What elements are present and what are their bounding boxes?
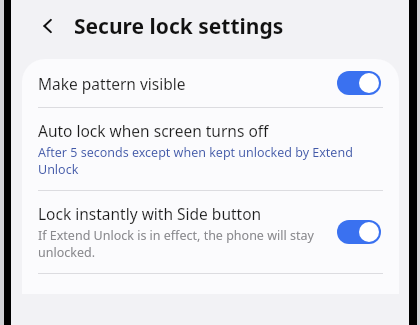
button[interactable]: Auto lock when screen turns off <box>22 108 399 190</box>
button[interactable]: Lock instantly with Side button <box>22 191 399 273</box>
staticText: Make pattern visible <box>38 73 186 94</box>
button[interactable]: Back <box>31 9 65 43</box>
staticText: After 5 seconds except when kept unlocke… <box>38 144 381 178</box>
button[interactable]: Toggle on <box>337 220 381 244</box>
staticText: Secure lock settings <box>74 12 284 41</box>
staticText: Lock instantly with Side button <box>38 203 262 224</box>
button[interactable]: Make pattern visible <box>22 59 399 107</box>
staticText: If Extend Unlock is in effect, the phone… <box>38 227 323 261</box>
staticText: Auto lock when screen turns off <box>38 120 269 141</box>
button[interactable]: Toggle on <box>337 71 381 95</box>
